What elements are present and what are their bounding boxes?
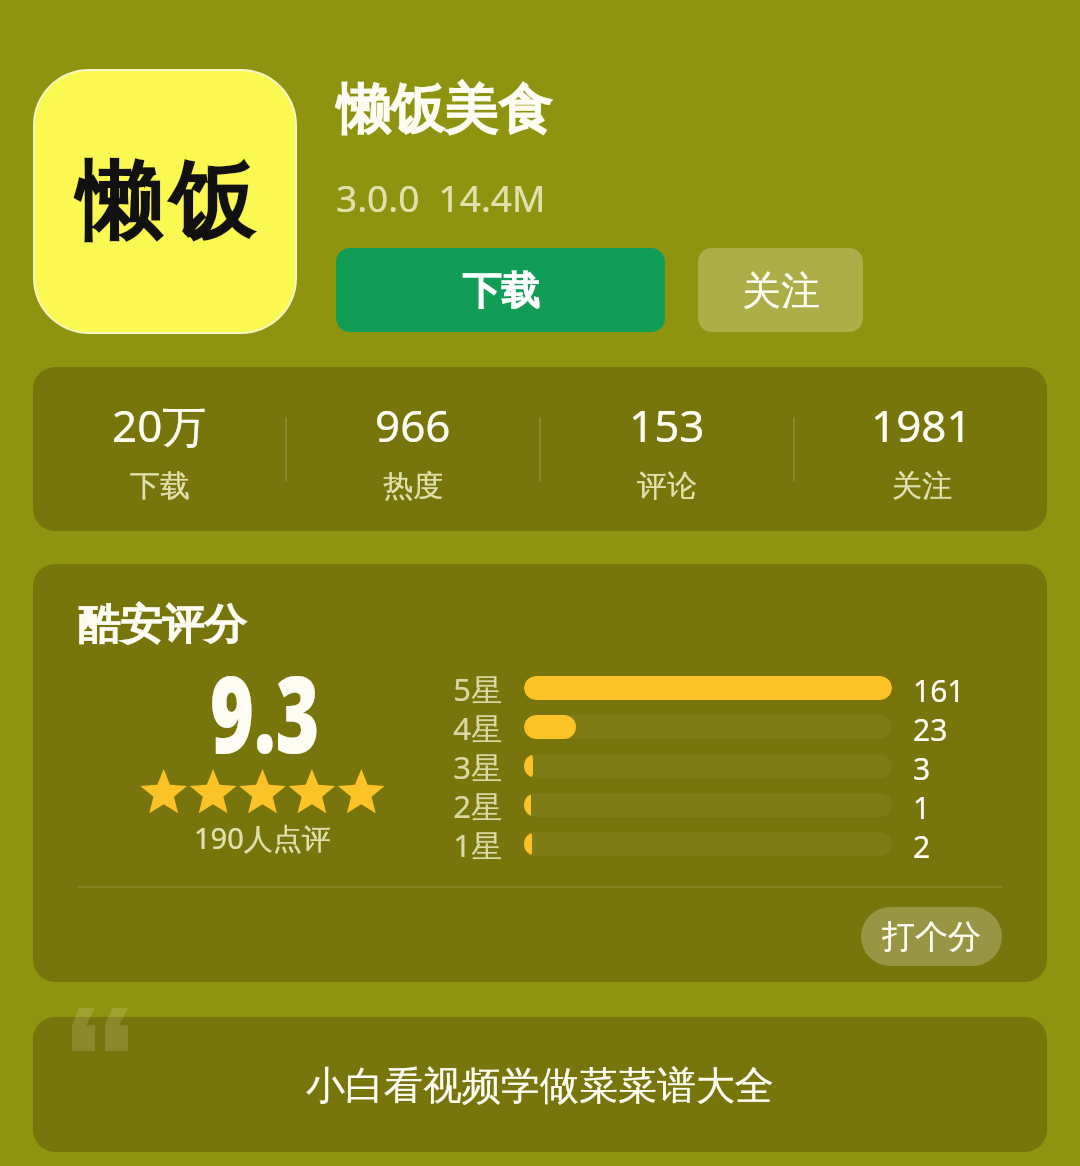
staticText: 关注 <box>742 266 820 315</box>
staticText: 小白看视频学做菜菜谱大全 <box>33 1061 1047 1110</box>
staticText: 2星 <box>412 785 502 827</box>
staticText: 20万 <box>112 395 207 455</box>
staticText: 3星 <box>412 746 502 788</box>
button[interactable]: App icon <box>35 71 295 332</box>
staticText: 966 <box>375 395 451 455</box>
button[interactable]: 1981 <box>795 367 1047 531</box>
staticText: 3 <box>913 748 931 789</box>
staticText: 3.0.0 14.4M <box>336 172 546 222</box>
staticText: 2 <box>913 826 931 867</box>
staticText: 打个分 <box>882 916 981 958</box>
button[interactable]: 下载 <box>336 248 665 332</box>
staticText: 懒饭 <box>72 148 258 256</box>
staticText: 热度 <box>383 467 443 505</box>
staticText: 懒饭美食 <box>336 76 552 144</box>
staticText: 23 <box>913 709 948 750</box>
staticText: 下载 <box>462 266 540 315</box>
staticText: 4星 <box>412 707 502 749</box>
staticText: 5星 <box>412 668 502 710</box>
staticText: 1星 <box>412 824 502 866</box>
button[interactable]: 20万 <box>33 367 285 531</box>
button[interactable]: 打个分 <box>861 907 1002 966</box>
button[interactable]: 关注 <box>698 248 863 332</box>
staticText: 190人点评 <box>194 818 331 858</box>
button[interactable]: 153 <box>541 367 793 531</box>
button[interactable]: 966 <box>287 367 539 531</box>
staticText: 1981 <box>871 395 972 455</box>
staticText: 评论 <box>637 467 697 505</box>
staticText: 酷安评分 <box>78 599 246 652</box>
staticText: 153 <box>629 395 705 455</box>
button[interactable]: 小白看视频学做菜菜谱大全 <box>33 1017 1047 1152</box>
staticText: 161 <box>913 670 965 711</box>
staticText: 1 <box>913 787 931 828</box>
staticText: 9.3 <box>210 639 320 785</box>
staticText: 下载 <box>130 467 190 505</box>
staticText: 关注 <box>892 467 952 505</box>
